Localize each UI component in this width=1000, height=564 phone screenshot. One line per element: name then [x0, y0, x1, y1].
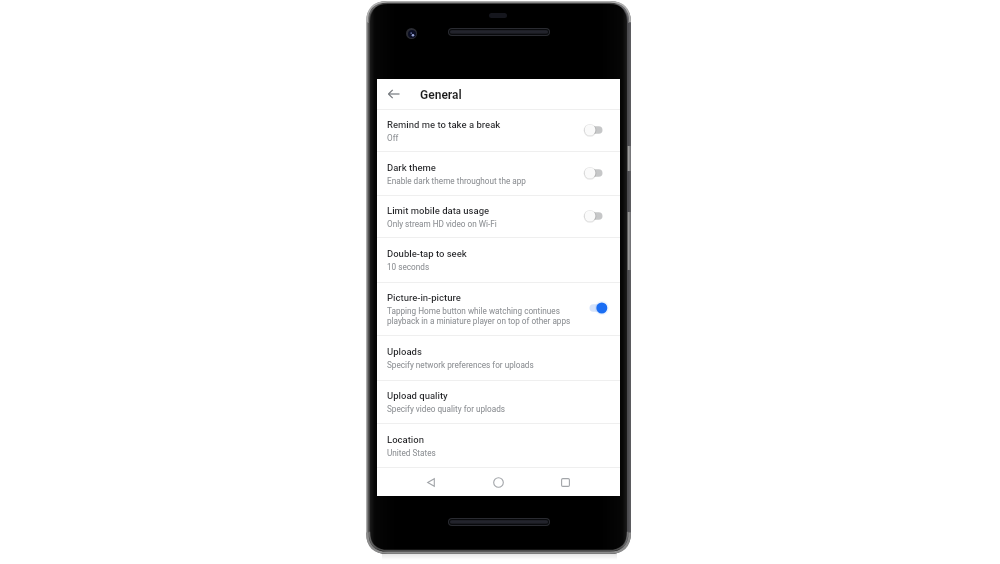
button[interactable]: Upload quality — [377, 381, 620, 423]
button[interactable]: Home — [484, 468, 512, 496]
staticText: playback in a miniature player on top of… — [387, 316, 571, 326]
staticText: Location — [387, 434, 424, 445]
staticText: Specify video quality for uploads — [387, 404, 506, 414]
button[interactable]: Picture-in-picture — [583, 300, 609, 316]
button[interactable]: Remind me to take a break — [377, 110, 620, 151]
button[interactable]: Navigate up — [384, 84, 404, 104]
staticText: Off — [387, 133, 399, 143]
staticText: Limit mobile data usage — [387, 205, 490, 216]
staticText: Double-tap to seek — [387, 248, 467, 259]
button[interactable]: Dark theme — [377, 152, 620, 195]
button[interactable]: Recent apps — [551, 468, 579, 496]
button[interactable]: Limit mobile data usage — [583, 208, 609, 224]
staticText: United States — [387, 448, 436, 458]
staticText: Only stream HD video on Wi-Fi — [387, 219, 497, 229]
staticText: Specify network preferences for uploads — [387, 360, 534, 370]
button[interactable]: Back — [417, 468, 445, 496]
staticText: Uploads — [387, 346, 422, 357]
staticText: General — [420, 88, 462, 102]
staticText: Enable dark theme throughout the app — [387, 176, 526, 186]
staticText: Dark theme — [387, 162, 436, 173]
button[interactable]: Double-tap to seek — [377, 238, 620, 282]
button[interactable]: Uploads — [377, 336, 620, 380]
staticText: Remind me to take a break — [387, 119, 501, 130]
button[interactable]: Location — [377, 424, 620, 467]
button[interactable]: Dark theme — [583, 165, 609, 181]
staticText: 10 seconds — [387, 262, 430, 272]
staticText: Upload quality — [387, 390, 448, 401]
button[interactable]: Remind me to take a break — [583, 122, 609, 138]
staticText: Tapping Home button while watching conti… — [387, 306, 560, 316]
staticText: Picture-in-picture — [387, 292, 461, 303]
button[interactable]: Limit mobile data usage — [377, 196, 620, 237]
button[interactable]: Picture-in-picture — [377, 283, 620, 335]
